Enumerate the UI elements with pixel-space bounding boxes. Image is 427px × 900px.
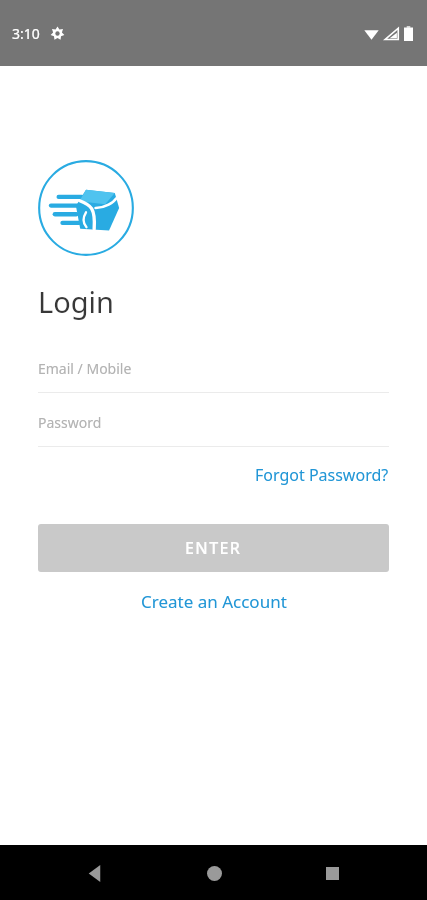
button[interactable]: Password xyxy=(38,413,389,446)
staticText: Login xyxy=(38,282,114,321)
button[interactable]: Forgot Password? xyxy=(255,460,389,490)
button[interactable]: Email / Mobile xyxy=(38,359,389,392)
button[interactable]: Back xyxy=(71,849,119,897)
button[interactable]: Create an Account xyxy=(129,586,299,617)
button[interactable]: Home xyxy=(190,849,238,897)
button[interactable]: Recent apps xyxy=(308,849,356,897)
staticText: ENTER xyxy=(185,537,242,559)
staticText: Forgot Password? xyxy=(255,464,389,486)
staticText: 3:10 xyxy=(12,24,40,43)
staticText: Create an Account xyxy=(141,590,287,613)
staticText: Password xyxy=(38,413,102,432)
staticText: Email / Mobile xyxy=(38,359,132,378)
button[interactable]: ENTER xyxy=(38,524,389,572)
